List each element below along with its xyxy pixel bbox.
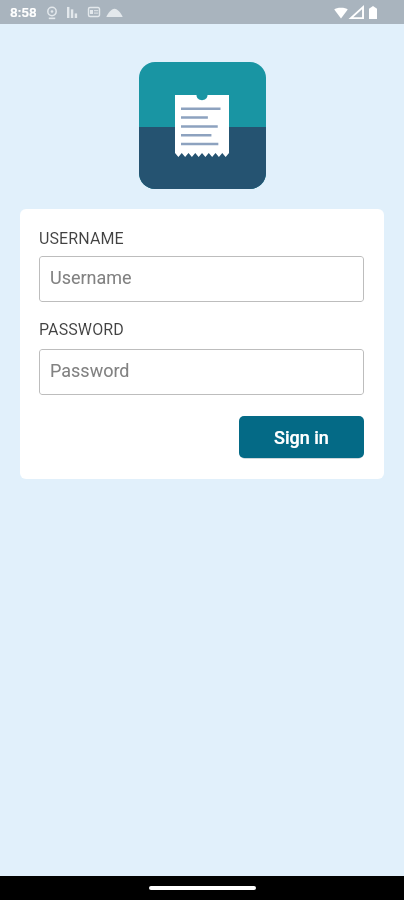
other: Statistics — [67, 6, 78, 18]
other: Cloud sync — [106, 7, 123, 18]
button[interactable]: Password — [39, 349, 364, 395]
other: Wi-Fi — [334, 6, 348, 19]
other: Location — [47, 6, 57, 19]
staticText: PASSWORD — [39, 320, 124, 339]
staticText: Username — [50, 267, 132, 288]
staticText: Password — [50, 360, 130, 381]
button[interactable]: Username — [39, 256, 364, 302]
button[interactable]: Sign in — [239, 416, 364, 458]
staticText: USERNAME — [39, 229, 124, 248]
other: Battery — [369, 6, 377, 19]
other: Card — [88, 7, 100, 17]
staticText: Sign in — [274, 427, 329, 448]
other: App logo — [139, 62, 266, 189]
other: Mobile signal — [350, 6, 364, 19]
staticText: 8:58 — [10, 4, 37, 20]
